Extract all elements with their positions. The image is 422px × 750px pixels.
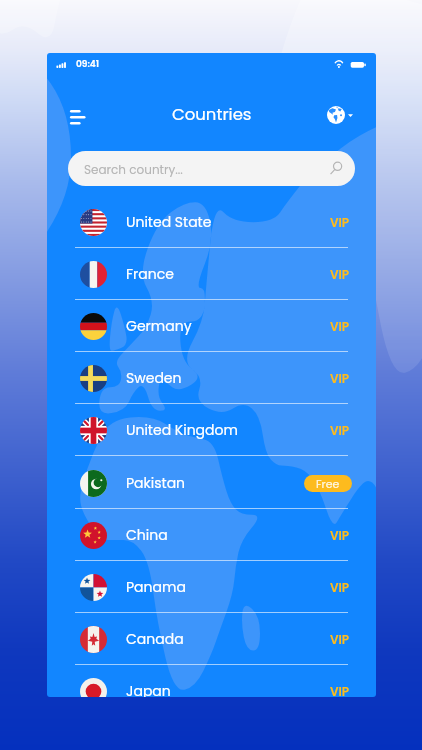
staticText: Panama	[126, 577, 330, 597]
staticText: United State	[126, 212, 330, 232]
button[interactable]: Select region	[327, 106, 353, 124]
button[interactable]: United Kingdom	[47, 404, 376, 456]
button[interactable]: Pakistan	[47, 457, 376, 509]
staticText: VIP	[330, 370, 350, 387]
button[interactable]: Canada	[47, 613, 376, 665]
staticText: Countries	[172, 103, 252, 126]
staticText: VIP	[330, 214, 350, 231]
button[interactable]: Panama	[47, 561, 376, 613]
staticText: China	[126, 525, 330, 545]
button[interactable]: Menu	[60, 100, 90, 130]
staticText: United Kingdom	[126, 420, 330, 440]
button[interactable]: Japan	[47, 665, 376, 697]
button[interactable]: France	[47, 248, 376, 300]
staticText: Germany	[126, 316, 330, 336]
staticText: Free	[316, 476, 340, 491]
button[interactable]: United State	[47, 196, 376, 248]
staticText: Search country...	[84, 161, 183, 178]
staticText: VIP	[330, 266, 350, 283]
button[interactable]: Search country...	[68, 151, 355, 186]
staticText: VIP	[330, 318, 350, 335]
staticText: 09:41	[76, 58, 100, 71]
staticText: VIP	[330, 422, 350, 439]
staticText: VIP	[330, 683, 350, 697]
button[interactable]: China	[47, 509, 376, 561]
staticText: Pakistan	[126, 473, 304, 493]
staticText: France	[126, 264, 330, 284]
staticText: Canada	[126, 629, 330, 649]
staticText: VIP	[330, 579, 350, 596]
staticText: Japan	[126, 681, 330, 697]
staticText: VIP	[330, 631, 350, 648]
staticText: VIP	[330, 527, 350, 544]
staticText: Sweden	[126, 368, 330, 388]
button[interactable]: Germany	[47, 300, 376, 352]
button[interactable]: Sweden	[47, 352, 376, 404]
